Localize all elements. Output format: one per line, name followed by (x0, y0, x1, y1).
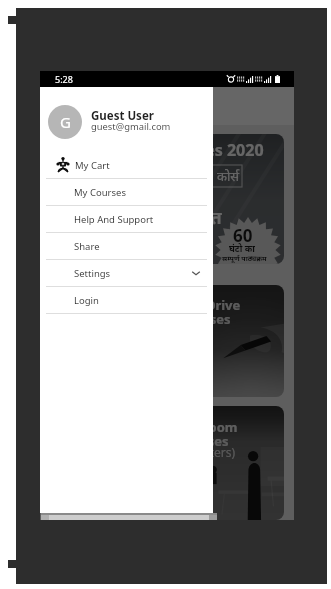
staticText: Classroom (170, 418, 238, 436)
staticText: Guest User (91, 108, 154, 124)
button[interactable]: Test Drive (50, 285, 284, 397)
staticText: 5:28 (55, 73, 73, 85)
button[interactable]: My Courses (40, 179, 213, 205)
staticText: Test Drive (176, 296, 241, 314)
staticText: Courses (179, 310, 231, 328)
staticText: मुफ्त (190, 206, 222, 229)
staticText: Help And Support (74, 213, 154, 226)
staticText: Share (74, 240, 100, 253)
staticText: घंटो का (229, 242, 255, 254)
button[interactable]: Help And Support (40, 206, 213, 232)
other: Expand (191, 268, 201, 278)
staticText: My Cart (75, 159, 110, 172)
staticText: My Courses (74, 186, 126, 199)
staticText: सम्पूर्ण पाठ्यक्रम (222, 254, 267, 264)
button[interactable]: Share (40, 233, 213, 259)
button[interactable]: Classroom (50, 406, 284, 520)
staticText: Best Courses 2020 (120, 139, 264, 161)
staticText: Courses (177, 432, 229, 450)
staticText: 60 (233, 224, 253, 247)
button[interactable]: Settings (40, 260, 213, 286)
staticText: Settings (74, 267, 111, 280)
button[interactable]: My Cart (40, 152, 213, 178)
staticText: कोर्स (217, 167, 240, 185)
staticText: G (60, 112, 71, 132)
button[interactable]: Best Courses 2020 (50, 134, 284, 264)
staticText: guest@gmail.com (91, 120, 171, 133)
staticText: Login (74, 294, 99, 307)
button[interactable]: Login (40, 287, 213, 313)
staticText: (at centers) (172, 444, 236, 460)
